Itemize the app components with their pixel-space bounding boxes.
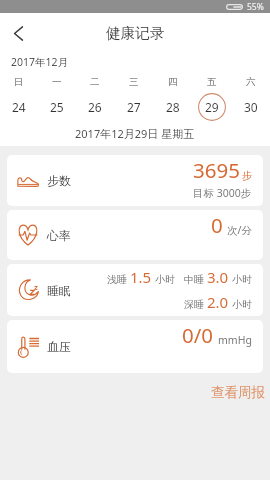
staticText: 小时 xyxy=(232,298,252,311)
staticText: 30 xyxy=(244,99,258,115)
button[interactable]: 查看周报 xyxy=(211,379,265,406)
staticText: 2017年12月29日 星期五 xyxy=(75,126,195,141)
staticText: 目标 3000步 xyxy=(193,186,252,200)
staticText: 日 xyxy=(14,76,24,88)
button[interactable]: 心率 xyxy=(7,210,263,260)
staticText: 小时 xyxy=(155,273,175,286)
button[interactable]: 29 xyxy=(192,93,231,121)
staticText: 六 xyxy=(246,76,256,88)
staticText: 三 xyxy=(129,76,139,88)
button[interactable]: 28 xyxy=(153,93,192,121)
staticText: 浅睡 xyxy=(107,273,127,286)
staticText: 26 xyxy=(88,99,102,115)
staticText: 28 xyxy=(166,99,180,115)
staticText: 25 xyxy=(50,99,64,115)
staticText: 二 xyxy=(90,76,100,88)
button[interactable]: 25 xyxy=(38,93,76,121)
staticText: 3.0 xyxy=(207,267,229,287)
staticText: 小时 xyxy=(232,273,252,286)
button[interactable]: 27 xyxy=(114,93,153,121)
staticText: 步 xyxy=(242,169,252,182)
staticText: 3695 xyxy=(193,156,240,184)
staticText: 中睡 xyxy=(184,273,204,286)
staticText: 步数 xyxy=(47,173,71,188)
staticText: 血压 xyxy=(47,339,71,354)
staticText: 一 xyxy=(52,76,62,88)
staticText: 健康记录 xyxy=(106,24,165,42)
button[interactable]: 血压 xyxy=(7,320,263,373)
staticText: 次/分 xyxy=(227,223,252,237)
button[interactable]: 26 xyxy=(76,93,114,121)
staticText: 27 xyxy=(127,99,141,115)
staticText: 1.5 xyxy=(130,267,152,287)
staticText: 55% xyxy=(247,1,264,13)
staticText: 2017年12月 xyxy=(11,55,69,69)
staticText: 2.0 xyxy=(207,292,229,312)
button[interactable]: 步数 xyxy=(7,155,263,206)
staticText: 0/0 xyxy=(182,321,214,349)
staticText: 深睡 xyxy=(184,298,204,311)
button[interactable]: 30 xyxy=(231,93,270,121)
button[interactable]: Back xyxy=(0,15,36,51)
staticText: 心率 xyxy=(47,228,71,243)
staticText: 四 xyxy=(168,76,178,88)
staticText: 五 xyxy=(207,76,217,88)
staticText: 0 xyxy=(211,211,223,239)
staticText: 查看周报 xyxy=(211,384,265,401)
staticText: 24 xyxy=(12,99,26,115)
button[interactable]: 睡眠 xyxy=(7,264,263,316)
staticText: 29 xyxy=(205,99,219,115)
staticText: 睡眠 xyxy=(47,283,71,298)
button[interactable]: 24 xyxy=(0,93,38,121)
staticText: mmHg xyxy=(218,333,252,347)
